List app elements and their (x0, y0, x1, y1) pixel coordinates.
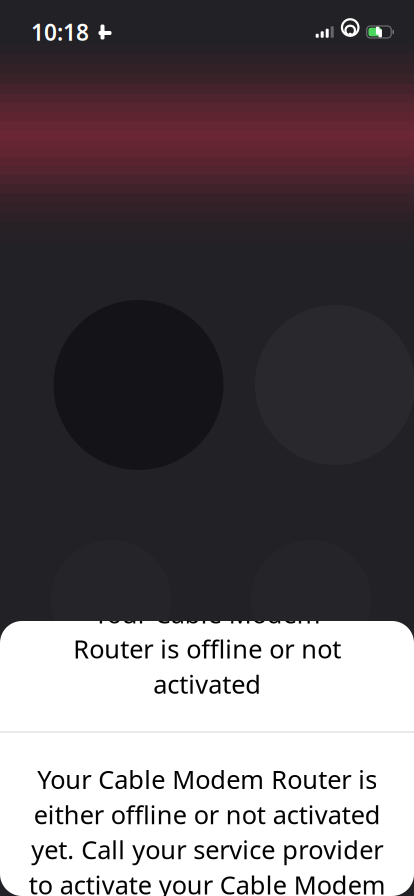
staticText: Your Cable Modem Router is offline or no… (73, 597, 341, 701)
staticText: 10:18 (31, 17, 89, 47)
staticText: Your Cable Modem Router is either offlin… (28, 762, 385, 896)
